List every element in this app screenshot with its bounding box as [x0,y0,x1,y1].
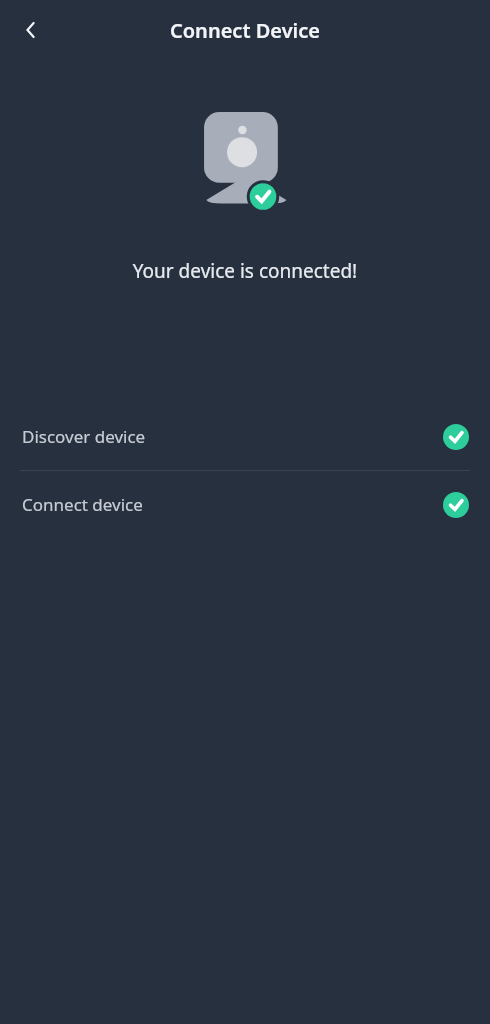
staticText: Your device is connected! [0,258,490,284]
staticText: Connect Device [170,17,320,44]
button[interactable]: Back [9,8,53,52]
staticText: Discover device [22,425,146,448]
staticText: Connect device [22,493,143,516]
button[interactable]: Discover device [0,403,490,470]
button[interactable]: Connect device [0,471,490,538]
